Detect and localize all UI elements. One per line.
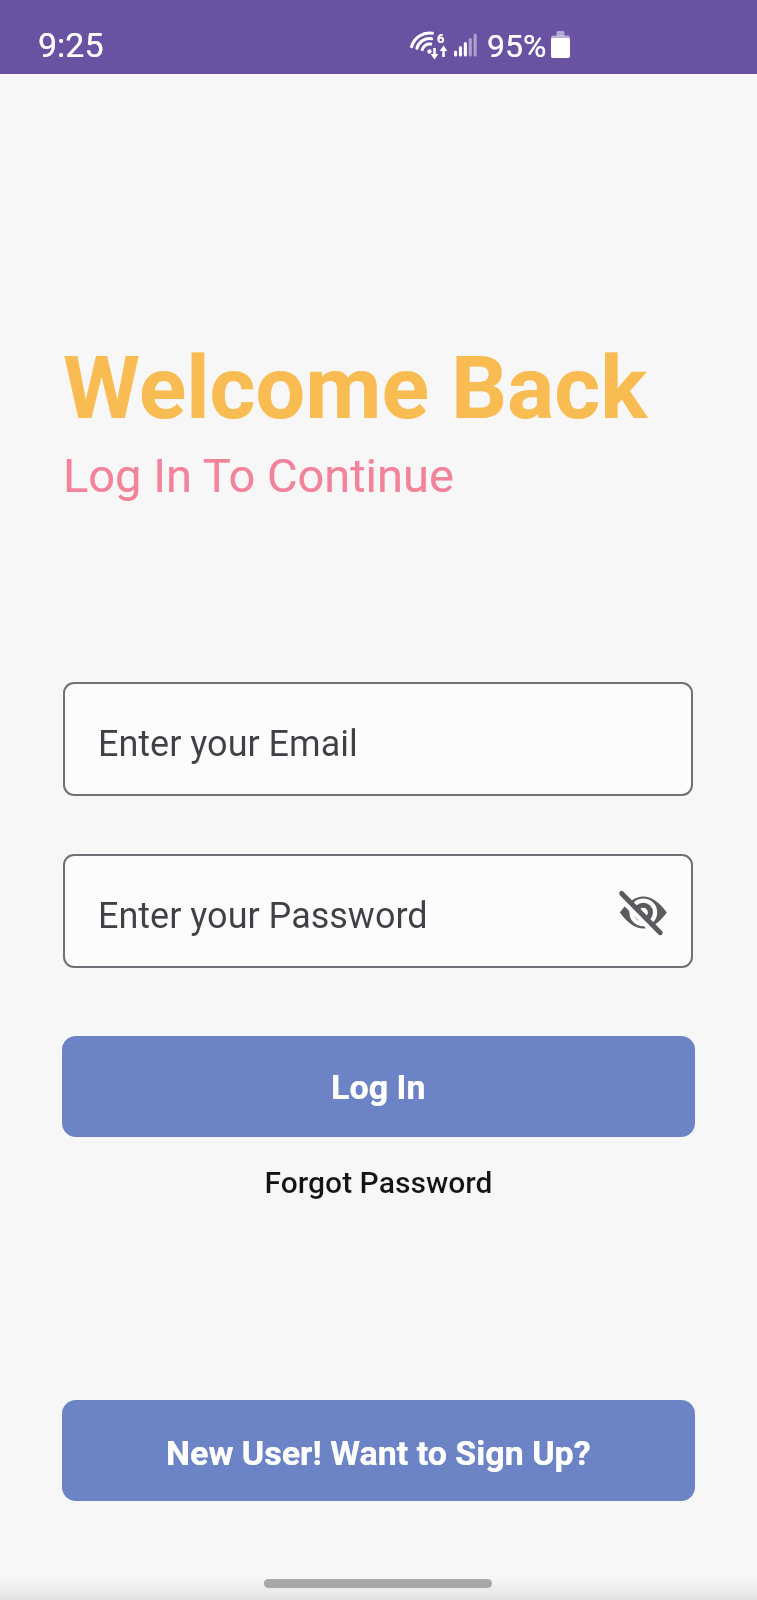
staticText: New User! Want to Sign Up?	[166, 1433, 591, 1473]
staticText: Log In To Continue	[63, 448, 454, 503]
staticText: Forgot Password	[0, 1165, 757, 1200]
staticText: 9:25	[38, 25, 104, 65]
staticText: Welcome Back	[63, 336, 648, 439]
staticText: Log In	[331, 1067, 426, 1107]
staticText: 6	[437, 31, 445, 46]
staticText: Enter your Password	[98, 895, 428, 937]
staticText: 95%	[487, 27, 547, 65]
staticText: Enter your Email	[98, 723, 358, 765]
